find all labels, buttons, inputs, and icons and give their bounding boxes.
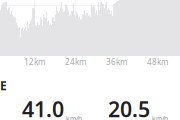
staticText: km/h (64, 114, 82, 120)
staticText: 36km (106, 57, 127, 67)
staticText: 20.5 (108, 95, 150, 120)
staticText: 48km (147, 57, 168, 67)
staticText: 41.0 (22, 95, 64, 120)
staticText: E (0, 77, 7, 93)
staticText: km/h (150, 114, 168, 120)
staticText: 12km (24, 57, 45, 67)
staticText: 24km (65, 57, 86, 67)
